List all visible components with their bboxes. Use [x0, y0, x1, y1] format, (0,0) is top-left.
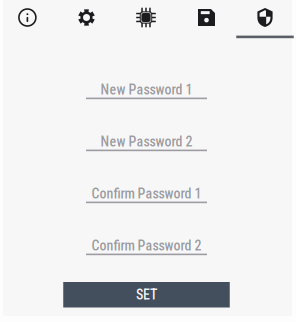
staticText: SET [136, 286, 157, 303]
button[interactable]: Device [117, 0, 175, 39]
staticText: Confirm Password 1 [91, 186, 201, 202]
button[interactable]: Confirm Password 1 [71, 187, 221, 203]
staticText: New Password 1 [100, 82, 192, 98]
button[interactable]: Security [236, 0, 294, 39]
staticText: New Password 2 [100, 134, 192, 150]
button[interactable]: Info [0, 0, 56, 39]
button[interactable]: SET [63, 282, 230, 307]
button[interactable]: New Password 1 [71, 83, 221, 99]
staticText: Confirm Password 2 [91, 238, 201, 254]
button[interactable]: Confirm Password 2 [71, 239, 221, 255]
button[interactable]: Save [178, 0, 235, 39]
button[interactable]: New Password 2 [71, 135, 221, 151]
button[interactable]: Settings [58, 0, 115, 39]
